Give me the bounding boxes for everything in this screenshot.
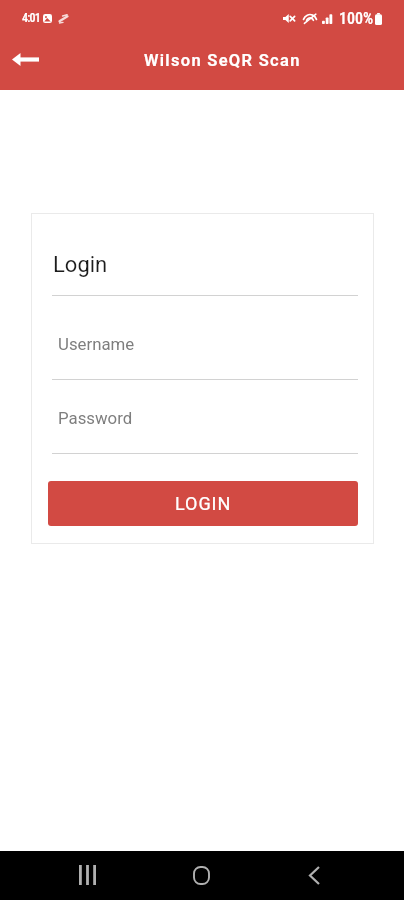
button[interactable]: Home (177, 851, 225, 899)
button[interactable]: Password (52, 397, 358, 454)
staticText: 100% (339, 9, 374, 28)
button[interactable]: LOGIN (48, 481, 358, 526)
staticText: Username (58, 334, 135, 354)
button[interactable]: Recent apps (63, 851, 111, 899)
button[interactable]: Username (52, 323, 358, 380)
staticText: Wilson SeQR Scan (144, 51, 301, 70)
button[interactable]: Back (290, 851, 338, 899)
staticText: LOGIN (175, 493, 232, 514)
staticText: 4:01 (22, 11, 41, 25)
button[interactable]: Back (5, 39, 45, 79)
staticText: Password (58, 408, 133, 428)
staticText: Login (53, 252, 108, 278)
